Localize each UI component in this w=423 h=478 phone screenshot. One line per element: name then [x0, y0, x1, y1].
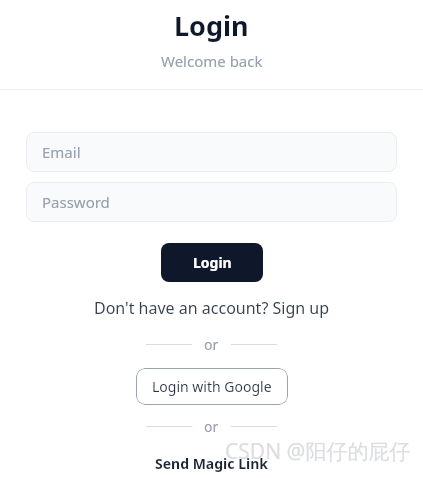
- staticText: or: [204, 417, 219, 436]
- button[interactable]: Login: [161, 243, 263, 282]
- staticText: CSDN @阳仔的屁仔: [225, 437, 411, 466]
- staticText: or: [204, 335, 219, 354]
- staticText: Login: [193, 253, 232, 272]
- staticText: Email: [42, 142, 81, 162]
- staticText: Welcome back: [161, 51, 263, 71]
- button[interactable]: Password: [26, 182, 397, 222]
- staticText: Password: [42, 192, 110, 212]
- staticText: Login: [174, 7, 249, 44]
- button[interactable]: Login with Google: [136, 368, 288, 405]
- staticText: Send Magic Link: [155, 454, 268, 473]
- staticText: Don't have an account? Sign up: [94, 297, 330, 319]
- button[interactable]: Don't have an account? Sign up: [90, 295, 334, 321]
- button[interactable]: Email: [26, 132, 397, 172]
- staticText: Login with Google: [152, 377, 272, 396]
- button[interactable]: Send Magic Link: [151, 452, 272, 475]
